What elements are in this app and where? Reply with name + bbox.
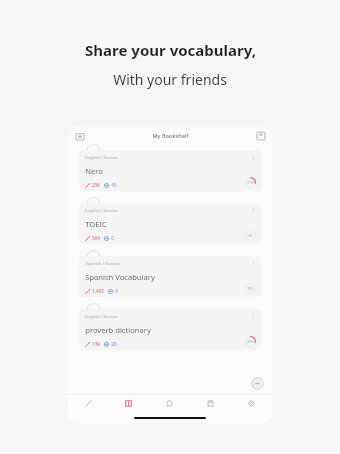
button[interactable]: Chat [149, 395, 190, 412]
staticText: Share your vocabulary, [85, 40, 256, 60]
staticText: 0 [115, 288, 118, 294]
staticText: proverb dictionary [85, 325, 151, 335]
staticText: 1,495 [92, 288, 104, 294]
button[interactable]: Card options [249, 312, 257, 320]
button[interactable]: Write [68, 395, 108, 412]
staticText: 28% [247, 340, 254, 344]
staticText: Nero [85, 166, 103, 176]
button[interactable]: Add book [253, 128, 268, 143]
button[interactable]: English / Korean [79, 304, 261, 350]
staticText: 45 [111, 182, 117, 188]
button[interactable]: Library [72, 128, 87, 143]
staticText: English / Korean [85, 207, 118, 213]
button[interactable]: Bookshelf [108, 395, 149, 412]
staticText: Spanish Vocabulary [85, 272, 155, 282]
button[interactable]: Settings [231, 395, 272, 412]
staticText: 0 [111, 235, 114, 241]
staticText: 27% [247, 181, 254, 185]
staticText: English / Korean [85, 154, 118, 160]
staticText: My Bookshelf [152, 132, 189, 140]
button[interactable]: English / Korean [79, 198, 261, 244]
staticText: English / Korean [85, 313, 118, 319]
button[interactable]: English / Korean [79, 145, 261, 191]
button[interactable]: Saved [190, 395, 231, 412]
staticText: 504 [92, 235, 100, 241]
staticText: Spanish / Korean [85, 260, 120, 266]
staticText: 0% [248, 287, 253, 291]
staticText: TOEIC [85, 219, 107, 229]
button[interactable]: Card options [249, 259, 257, 267]
staticText: 20 [111, 341, 117, 347]
button[interactable]: Spanish / Korean [79, 251, 261, 297]
staticText: 0% [248, 234, 253, 238]
button[interactable]: Card options [249, 206, 257, 214]
button[interactable]: Menu [251, 377, 264, 390]
button[interactable]: Card options [249, 153, 257, 161]
staticText: With your friends [113, 70, 227, 89]
staticText: 256 [92, 182, 100, 188]
staticText: 139 [92, 341, 100, 347]
